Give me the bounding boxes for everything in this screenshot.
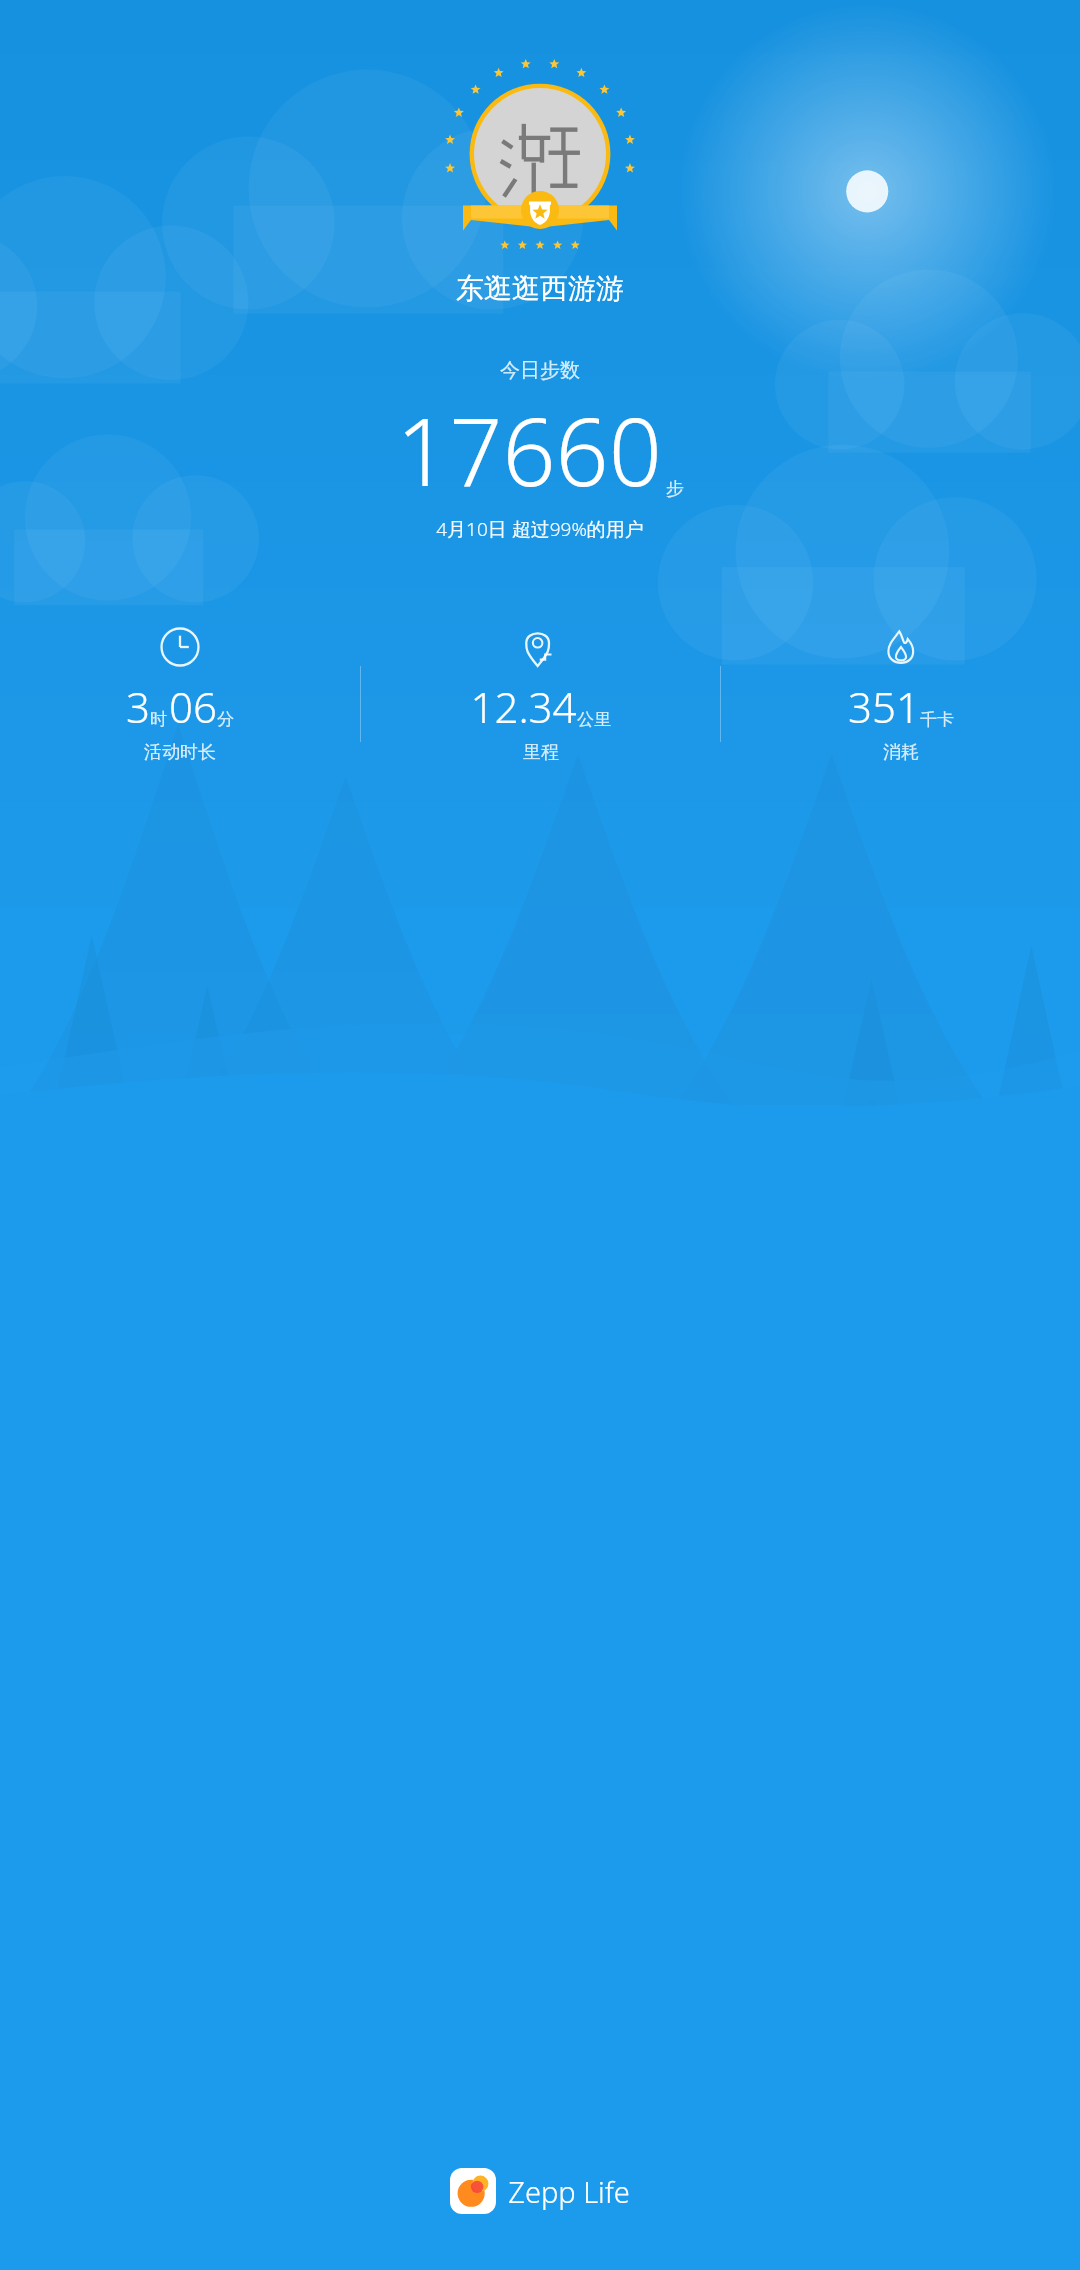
button[interactable]: 活动时长 (0, 626, 360, 764)
staticText: 今日步数 (500, 358, 580, 383)
staticText: 公里 (577, 709, 611, 730)
staticText: 351 (848, 678, 920, 735)
staticText: 消耗 (883, 741, 919, 764)
other: 活动时长 (159, 626, 201, 668)
staticText: 活动时长 (144, 741, 216, 764)
staticText: 千卡 (920, 709, 954, 730)
button[interactable]: Zepp Life (444, 2162, 636, 2220)
staticText: 步 (666, 478, 684, 501)
staticText: 东逛逛西游游 (456, 271, 624, 306)
staticText: 12.34 (470, 678, 577, 735)
staticText: Zepp Life (508, 2172, 630, 2211)
button[interactable]: 消耗 (721, 626, 1080, 764)
staticText: 时 (150, 709, 167, 730)
staticText: 3 (126, 678, 150, 735)
button[interactable]: 里程 (361, 626, 720, 764)
staticText: 分 (217, 709, 234, 730)
staticText: 17660 (396, 387, 662, 514)
staticText: 4月10日 超过99%的用户 (436, 516, 644, 542)
other: 里程 (520, 626, 562, 668)
staticText: 里程 (523, 741, 559, 764)
other: 消耗 (880, 626, 922, 668)
staticText: 06 (169, 678, 217, 735)
